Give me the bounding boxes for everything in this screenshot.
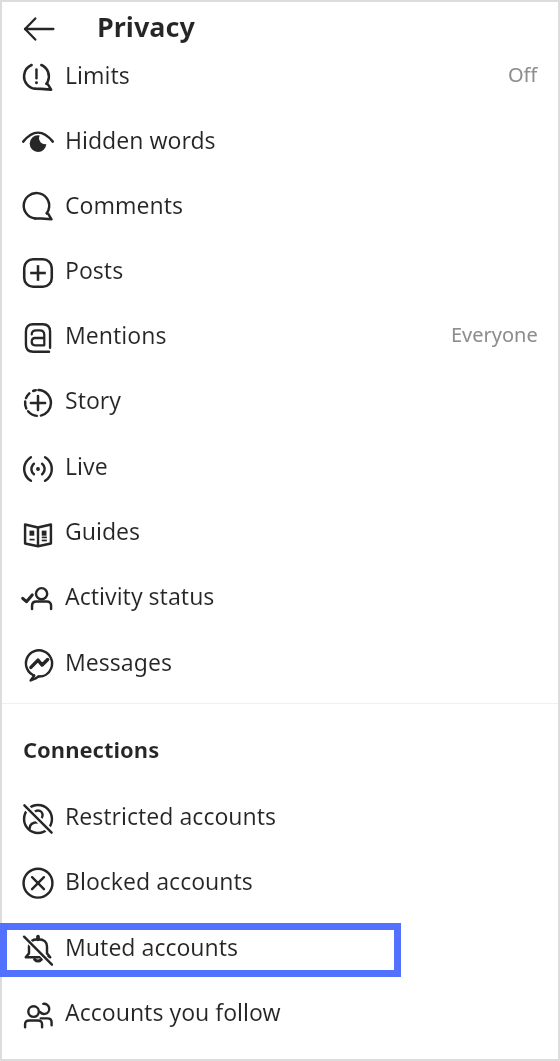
staticText: Muted accounts: [65, 931, 239, 962]
staticText: Messages: [65, 646, 172, 677]
staticText: Off: [508, 61, 538, 88]
button[interactable]: Muted accounts: [2, 917, 558, 982]
staticText: Story: [65, 384, 122, 415]
button[interactable]: Restricted accounts: [2, 786, 558, 851]
staticText: Everyone: [451, 321, 538, 348]
staticText: Hidden words: [65, 124, 216, 155]
button[interactable]: Activity status: [2, 566, 558, 631]
staticText: Mentions: [65, 319, 167, 350]
button[interactable]: Mentions: [2, 305, 558, 370]
button[interactable]: Back: [19, 9, 59, 49]
staticText: Accounts you follow: [65, 996, 281, 1027]
staticText: Live: [65, 450, 108, 481]
staticText: Blocked accounts: [65, 865, 253, 896]
staticText: Activity status: [65, 580, 215, 611]
button[interactable]: Comments: [2, 175, 558, 240]
staticText: Connections: [23, 734, 160, 764]
button[interactable]: Messages: [2, 632, 558, 697]
button[interactable]: Limits: [2, 45, 558, 110]
staticText: Limits: [65, 59, 130, 90]
staticText: Privacy: [97, 8, 195, 45]
button[interactable]: Guides: [2, 501, 558, 566]
button[interactable]: Blocked accounts: [2, 851, 558, 916]
staticText: Posts: [65, 254, 124, 285]
staticText: Comments: [65, 189, 183, 220]
button[interactable]: Posts: [2, 240, 558, 305]
button[interactable]: Accounts you follow: [2, 982, 558, 1047]
button[interactable]: Live: [2, 436, 558, 501]
staticText: Guides: [65, 515, 141, 546]
button[interactable]: Hidden words: [2, 110, 558, 175]
staticText: Restricted accounts: [65, 800, 277, 831]
button[interactable]: Story: [2, 370, 558, 435]
